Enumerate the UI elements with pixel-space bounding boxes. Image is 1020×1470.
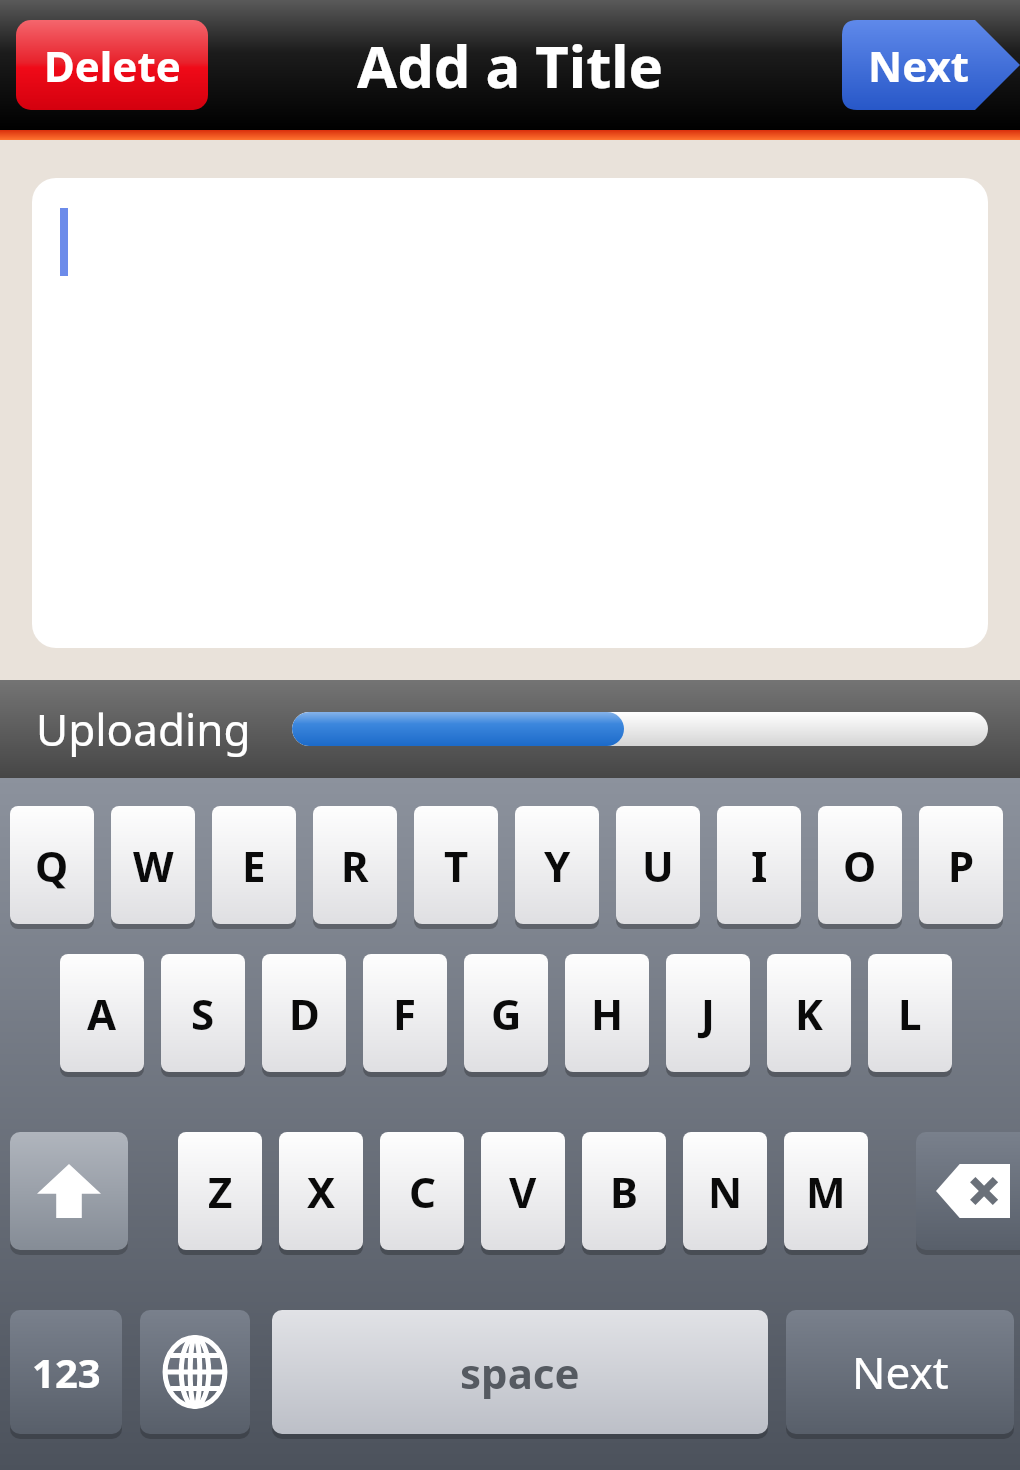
button[interactable]: N [683,1132,767,1250]
staticText: V [509,1163,537,1220]
button[interactable]: O [818,806,902,924]
button[interactable]: B [582,1132,666,1250]
staticText: S [191,985,215,1042]
staticText: C [409,1163,436,1220]
button[interactable] [32,178,988,648]
button[interactable]: M [784,1132,868,1250]
staticText: O [843,837,877,894]
button[interactable]: K [767,954,851,1072]
button[interactable]: A [60,954,144,1072]
button[interactable]: 123 [10,1310,122,1434]
button[interactable]: Backspace [916,1132,1020,1250]
staticText: I [751,837,768,894]
staticText: 123 [32,1345,101,1399]
staticText: R [341,837,369,894]
staticText: G [491,985,522,1042]
staticText: N [708,1163,743,1220]
button[interactable]: Y [515,806,599,924]
button[interactable]: Next [842,20,1020,110]
button[interactable]: L [868,954,952,1072]
staticText: B [610,1163,638,1220]
button[interactable]: S [161,954,245,1072]
staticText: Q [35,837,69,894]
staticText: P [948,837,975,894]
button[interactable]: Delete [16,20,208,110]
button[interactable]: H [565,954,649,1072]
button[interactable]: Z [178,1132,262,1250]
button[interactable]: P [919,806,1003,924]
staticText: U [642,837,674,894]
button[interactable]: X [279,1132,363,1250]
staticText: E [242,837,266,894]
button[interactable]: I [717,806,801,924]
staticText: F [393,985,417,1042]
button[interactable]: F [363,954,447,1072]
staticText: X [307,1163,336,1220]
staticText: W [133,837,174,894]
button[interactable]: space [272,1310,768,1434]
staticText: L [898,985,922,1042]
staticText: Uploading [36,699,251,759]
button[interactable]: J [666,954,750,1072]
staticText: H [591,985,624,1042]
staticText: T [444,837,469,894]
button[interactable]: E [212,806,296,924]
staticText: K [795,985,823,1042]
staticText: M [806,1163,846,1220]
button[interactable]: Shift [10,1132,128,1250]
button[interactable]: U [616,806,700,924]
button[interactable]: V [481,1132,565,1250]
staticText: Z [208,1163,233,1220]
staticText: Next [852,1342,949,1402]
staticText: Y [544,837,571,894]
button[interactable]: Switch keyboard language [140,1310,250,1434]
button[interactable]: Q [10,806,94,924]
staticText: Add a Title [357,26,664,105]
staticText: J [701,985,715,1042]
staticText: Delete [44,37,181,94]
button[interactable]: C [380,1132,464,1250]
button[interactable]: D [262,954,346,1072]
button[interactable]: R [313,806,397,924]
staticText: A [87,985,117,1042]
button[interactable]: G [464,954,548,1072]
staticText: D [289,985,320,1042]
staticText: space [460,1344,580,1401]
staticText: Next [868,37,969,94]
button[interactable]: Next [786,1310,1014,1434]
button[interactable]: T [414,806,498,924]
button[interactable]: W [111,806,195,924]
